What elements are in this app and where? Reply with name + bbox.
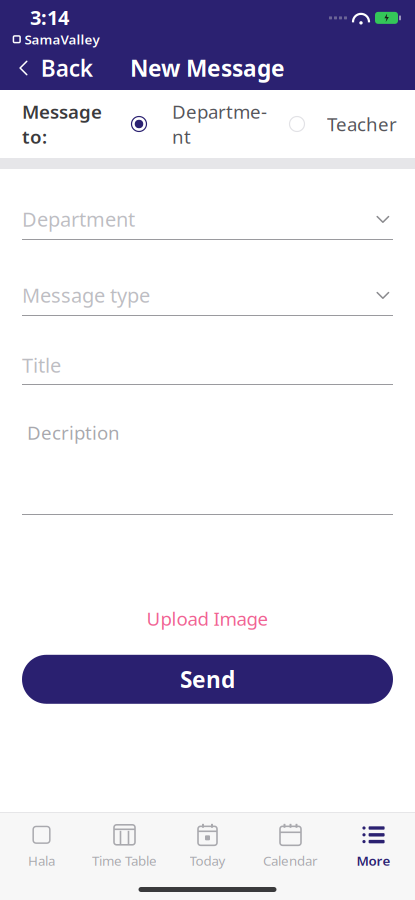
button[interactable]: Back <box>0 47 93 89</box>
staticText: Title <box>22 352 61 378</box>
button[interactable]: Department <box>131 91 267 157</box>
button[interactable]: More <box>332 813 415 875</box>
button[interactable]: Send <box>22 655 393 704</box>
button[interactable]: Message type <box>22 275 393 316</box>
staticText: Calendar <box>263 852 318 869</box>
staticText: Upload Image <box>146 606 268 631</box>
staticText: Today <box>189 852 225 869</box>
button[interactable]: Calendar <box>249 813 332 875</box>
staticText: Send <box>180 664 235 694</box>
button[interactable]: Upload Image <box>136 600 278 637</box>
button[interactable]: Teacher <box>289 104 397 144</box>
button[interactable]: Department <box>22 199 393 240</box>
staticText: Message type <box>22 282 150 308</box>
staticText: Department <box>22 206 135 232</box>
button[interactable]: Hala <box>0 813 83 875</box>
button[interactable]: Today <box>166 813 249 875</box>
staticText: SamaValley <box>24 30 99 48</box>
button[interactable]: Title <box>22 346 393 385</box>
button[interactable]: Time Table <box>83 813 166 875</box>
staticText: Time Table <box>92 852 157 869</box>
staticText: New Message <box>130 53 285 83</box>
staticText: Message to: <box>22 99 102 149</box>
staticText: 3:14 <box>30 4 69 30</box>
staticText: Back <box>41 53 93 83</box>
staticText: Decription <box>27 420 120 445</box>
staticText: Teacher <box>327 112 397 136</box>
staticText: Hala <box>28 852 55 869</box>
staticText: Department <box>172 99 267 149</box>
staticText: More <box>356 852 390 869</box>
button[interactable]: Decription <box>22 410 393 515</box>
